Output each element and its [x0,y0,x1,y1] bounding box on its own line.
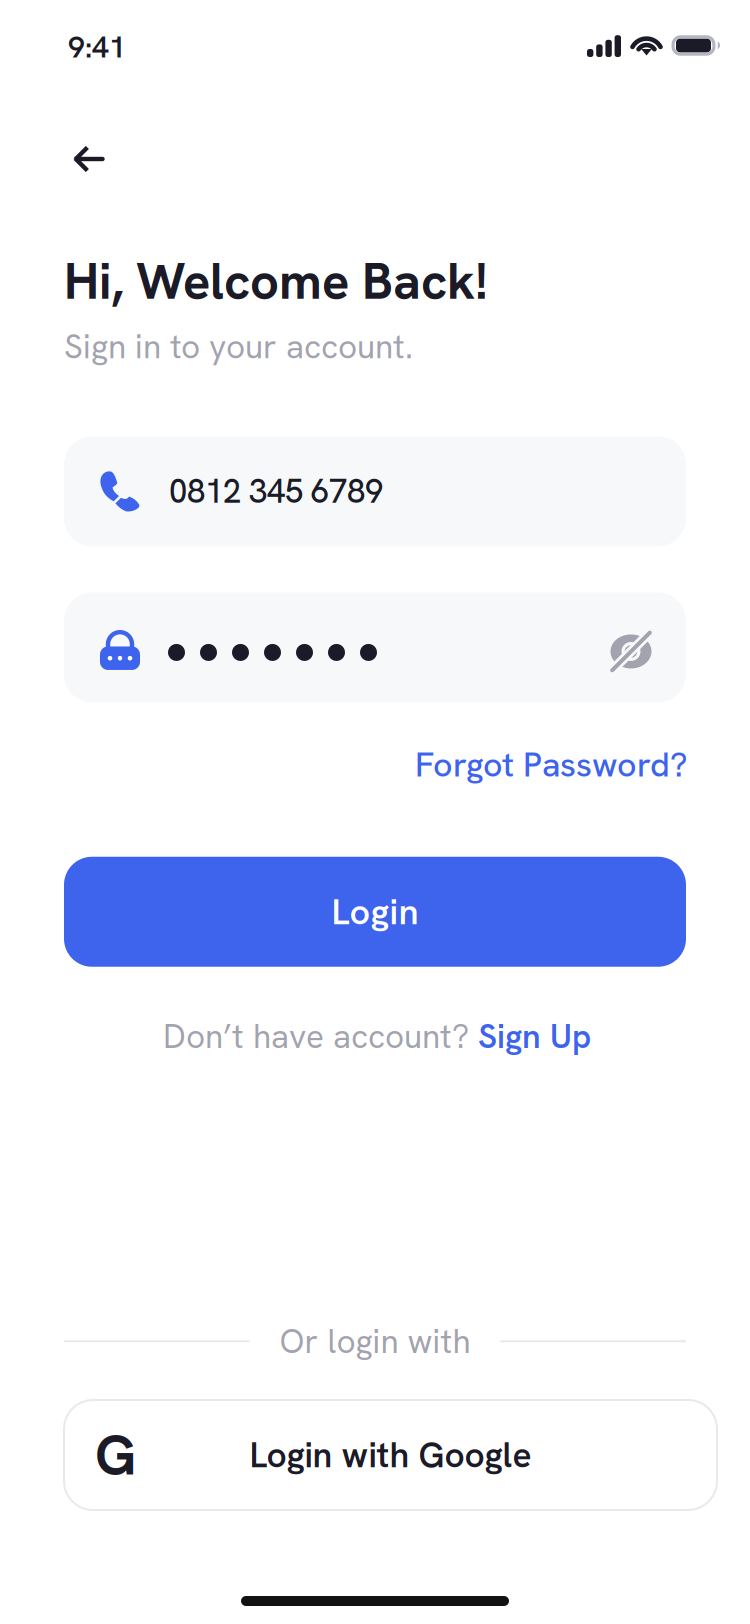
staticText: Login [331,888,418,935]
button[interactable]: Sign Up [478,1015,591,1058]
staticText: Forgot Password? [415,742,688,787]
staticText: 9:41 [68,27,126,67]
button[interactable]: Back [56,127,120,191]
staticText: G [95,1418,136,1491]
staticText: Don’t have account? [163,1015,478,1058]
staticText: Hi, Welcome Back! [64,248,488,314]
staticText: Sign in to your account. [64,325,413,368]
staticText: Or login with [279,1320,470,1363]
staticText: Sign Up [478,1015,591,1058]
button[interactable]: Forgot Password? [413,742,686,787]
staticText: Login with Google [249,1432,531,1478]
staticText: 0812 345 6789 [169,470,383,513]
button[interactable]: Show password [603,623,659,679]
button[interactable]: Login [64,857,686,967]
button[interactable]: Login with Google [64,1400,717,1510]
